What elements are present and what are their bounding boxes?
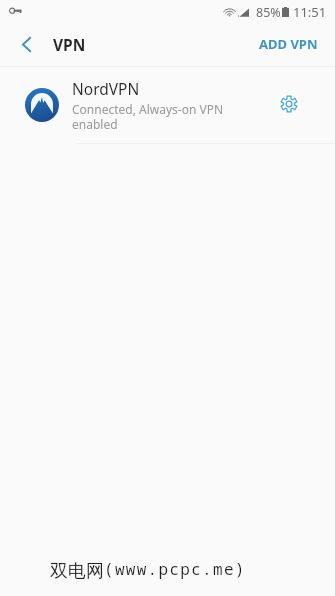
staticText: 11:51 [293,3,327,21]
staticText: (www.pcpc.me) [104,558,246,580]
staticText: 85% [256,4,281,21]
staticText: NordVPN [72,78,140,99]
staticText: Connected, Always-on VPN enabled [72,101,232,132]
button[interactable]: Settings [272,87,305,120]
button[interactable]: Back [8,23,44,66]
button[interactable]: NordVPN [0,66,335,144]
staticText: VPN [53,34,86,55]
staticText: 双电网 [50,560,104,583]
staticText: ADD VPN [259,35,318,53]
button[interactable]: ADD VPN [239,24,335,64]
